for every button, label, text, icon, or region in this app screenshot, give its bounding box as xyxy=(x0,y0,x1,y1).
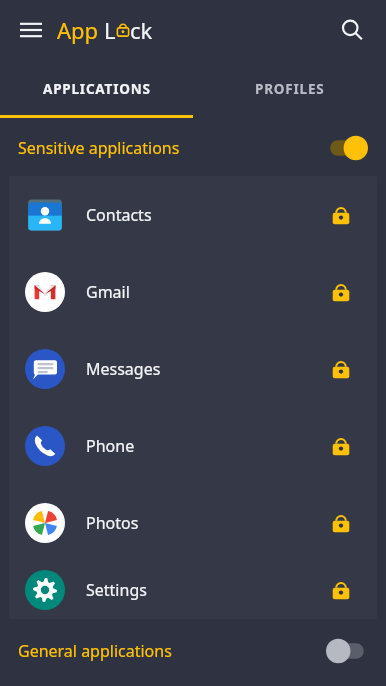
staticText: APPLICATIONS xyxy=(43,80,151,98)
button[interactable]: Open navigation menu xyxy=(10,9,52,51)
button[interactable]: PROFILES xyxy=(193,60,386,118)
button[interactable]: Photos xyxy=(9,484,377,561)
staticText: Messages xyxy=(86,358,161,380)
button[interactable]: Contacts xyxy=(9,176,377,253)
button[interactable]: General applications xyxy=(0,633,386,669)
button[interactable]: Messages xyxy=(9,330,377,407)
button[interactable]: Search xyxy=(330,8,374,52)
staticText: General applications xyxy=(18,640,172,662)
button[interactable]: Phone xyxy=(9,407,377,484)
button[interactable]: Gmail xyxy=(9,253,377,330)
staticText: Sensitive applications xyxy=(18,137,180,159)
staticText: Settings xyxy=(86,579,147,601)
staticText: Phone xyxy=(86,435,135,457)
staticText: PROFILES xyxy=(255,80,325,98)
staticText: Gmail xyxy=(86,281,130,303)
button[interactable]: APPLICATIONS xyxy=(0,60,193,118)
staticText: Photos xyxy=(86,512,139,534)
staticText: App xyxy=(57,15,104,45)
button[interactable]: Sensitive applications xyxy=(0,130,386,166)
staticText: ck xyxy=(130,15,153,45)
staticText: L xyxy=(104,15,116,45)
button[interactable]: Settings xyxy=(9,561,377,619)
staticText: Contacts xyxy=(86,204,152,226)
